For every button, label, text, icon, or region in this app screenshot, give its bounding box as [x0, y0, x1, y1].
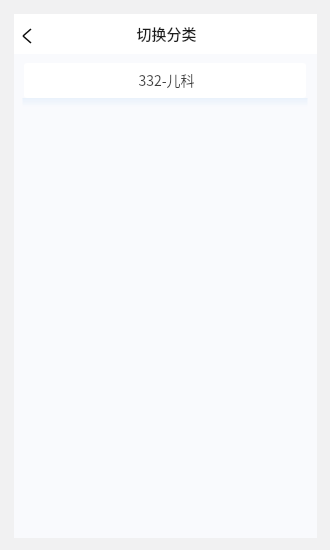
button[interactable]: Back	[18, 14, 48, 54]
staticText: 切换分类	[136, 23, 197, 45]
staticText: 332-儿科	[138, 70, 195, 90]
button[interactable]: 332-儿科	[24, 63, 306, 98]
